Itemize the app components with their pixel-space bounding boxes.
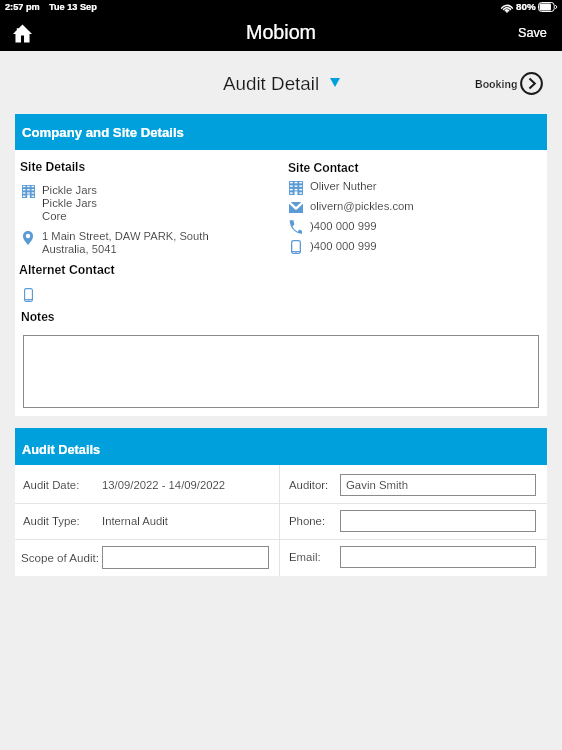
staticText: Auditor:: [289, 479, 329, 492]
staticText: Email:: [289, 551, 321, 564]
staticText: Internal Audit: [102, 515, 168, 528]
staticText: Booking: [475, 78, 518, 90]
staticText: Save: [518, 26, 547, 40]
staticText: 80%: [516, 1, 536, 12]
button[interactable]: Gavin Smith: [340, 474, 536, 496]
button[interactable]: [23, 335, 539, 408]
staticText: Audit Type:: [23, 515, 80, 528]
staticText: Audit Date:: [23, 479, 80, 492]
staticText: Alternet Contact: [19, 263, 115, 277]
button[interactable]: Home: [7, 18, 37, 48]
staticText: Phone:: [289, 515, 326, 528]
staticText: Oliver Nuther: [310, 180, 377, 193]
staticText: Tue 13 Sep: [49, 2, 97, 12]
staticText: )400 000 999: [310, 220, 377, 233]
button[interactable]: Booking: [475, 72, 543, 95]
button[interactable]: Save: [518, 26, 547, 40]
staticText: Pickle Jars Pickle Jars Core: [42, 184, 98, 223]
staticText: Scope of Audit:: [21, 551, 99, 564]
staticText: Audit Details: [22, 442, 101, 456]
staticText: Audit Detail: [223, 73, 320, 94]
staticText: )400 000 999: [310, 240, 377, 253]
staticText: 13/09/2022 - 14/09/2022: [102, 479, 226, 492]
button[interactable]: [340, 510, 536, 532]
button[interactable]: [340, 546, 536, 568]
staticText: 1 Main Street, DAW PARK, South Australia…: [42, 230, 209, 256]
staticText: Company and Site Details: [22, 125, 184, 140]
staticText: Notes: [21, 310, 55, 324]
staticText: Site Details: [20, 160, 86, 174]
button[interactable]: Audit Detail: [223, 73, 340, 94]
staticText: olivern@pickles.com: [310, 200, 414, 213]
staticText: 2:57 pm: [5, 2, 40, 12]
staticText: Site Contact: [288, 161, 359, 175]
staticText: Mobiom: [246, 21, 317, 43]
staticText: Gavin Smith: [346, 479, 409, 492]
button[interactable]: [102, 546, 269, 569]
